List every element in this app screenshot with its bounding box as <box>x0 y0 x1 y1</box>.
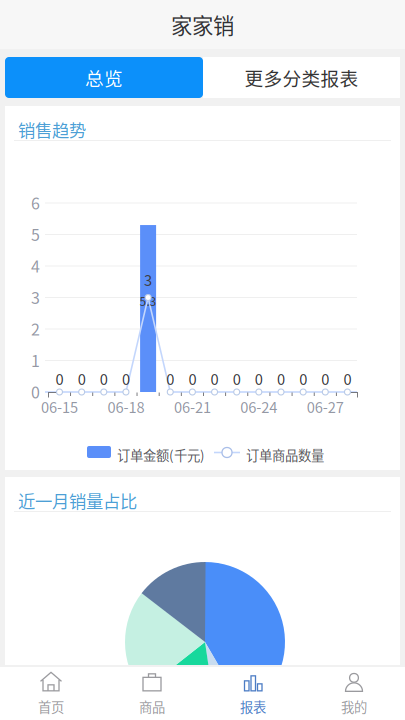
staticText: 0 <box>277 368 285 389</box>
staticText: 6 <box>31 191 40 214</box>
staticText: 首页 <box>38 697 64 716</box>
staticText: 4 <box>31 254 40 277</box>
button[interactable]: 首页 <box>0 667 101 720</box>
button[interactable]: 总览 <box>5 57 203 98</box>
staticText: 06-27 <box>307 396 344 417</box>
staticText: 0 <box>188 368 196 389</box>
staticText: 06-18 <box>107 396 144 417</box>
staticText: 家家销 <box>171 9 234 40</box>
staticText: 0 <box>255 368 263 389</box>
staticText: 06-21 <box>174 396 211 417</box>
staticText: 订单商品数量 <box>246 445 324 464</box>
staticText: 0 <box>343 368 351 389</box>
staticText: 销售趋势 <box>18 117 86 142</box>
staticText: 总览 <box>85 64 123 91</box>
staticText: 更多分类报表 <box>244 64 358 91</box>
staticText: 3 <box>144 269 152 290</box>
staticText: 0 <box>31 380 40 403</box>
staticText: 报表 <box>240 697 266 716</box>
staticText: 0 <box>122 368 130 389</box>
staticText: 商品 <box>139 697 165 716</box>
staticText: 1 <box>31 348 40 372</box>
staticText: 我的 <box>341 697 367 716</box>
staticText: 0 <box>233 368 241 389</box>
staticText: 0 <box>299 368 307 389</box>
button[interactable]: 报表 <box>202 667 303 720</box>
staticText: 06-24 <box>240 396 277 417</box>
staticText: 近一月销量占比 <box>18 488 137 513</box>
button[interactable]: 更多分类报表 <box>203 57 400 98</box>
staticText: 3 <box>31 285 40 309</box>
staticText: 0 <box>100 368 108 389</box>
staticText: 5.3 <box>140 292 157 309</box>
staticText: 0 <box>55 368 63 389</box>
button[interactable]: 商品 <box>101 667 202 720</box>
button[interactable]: 我的 <box>303 667 404 720</box>
staticText: 06-15 <box>41 396 78 417</box>
staticText: 0 <box>78 368 86 389</box>
staticText: 5 <box>31 222 40 246</box>
staticText: 0 <box>210 368 218 389</box>
staticText: 订单金额(千元) <box>117 445 205 464</box>
staticText: 2 <box>31 317 40 340</box>
staticText: 0 <box>166 368 174 389</box>
staticText: 0 <box>321 368 329 389</box>
